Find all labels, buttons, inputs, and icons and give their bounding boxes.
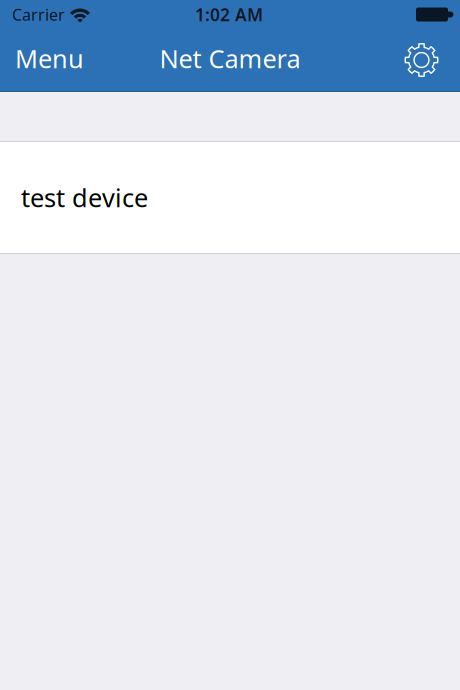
staticText: Carrier	[12, 4, 65, 25]
button[interactable]: Settings	[392, 30, 460, 90]
staticText: 1:02 AM	[195, 3, 263, 26]
staticText: Net Camera	[159, 42, 300, 75]
staticText: test device	[21, 181, 148, 214]
staticText: Menu	[15, 42, 84, 75]
button[interactable]: Menu	[0, 30, 96, 90]
button[interactable]: test device	[0, 142, 460, 253]
